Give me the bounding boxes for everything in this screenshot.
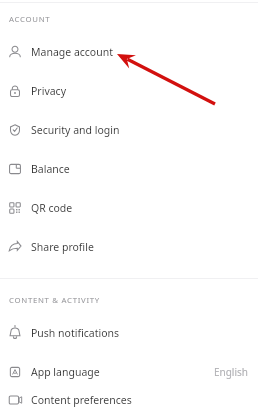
staticText: CONTENT & ACTIVITY <box>9 295 100 306</box>
button[interactable]: App language <box>0 352 258 391</box>
button[interactable]: Share profile <box>0 227 258 266</box>
staticText: Manage account <box>31 45 248 59</box>
staticText: App language <box>31 365 213 379</box>
staticText: Share profile <box>31 240 248 254</box>
staticText: Balance <box>31 162 248 176</box>
button[interactable]: Security and login <box>0 110 258 149</box>
button[interactable]: Content preferences <box>0 391 258 409</box>
button[interactable]: QR code <box>0 188 258 227</box>
staticText: Content preferences <box>31 393 248 407</box>
button[interactable]: Manage account <box>0 32 258 71</box>
button[interactable]: Push notifications <box>0 313 258 352</box>
staticText: Privacy <box>31 84 248 98</box>
staticText: QR code <box>31 201 248 215</box>
staticText: English <box>213 365 248 379</box>
staticText: Security and login <box>31 123 248 137</box>
staticText: Push notifications <box>31 326 248 340</box>
button[interactable]: Privacy <box>0 71 258 110</box>
button[interactable]: Balance <box>0 149 258 188</box>
staticText: ACCOUNT <box>9 14 51 25</box>
